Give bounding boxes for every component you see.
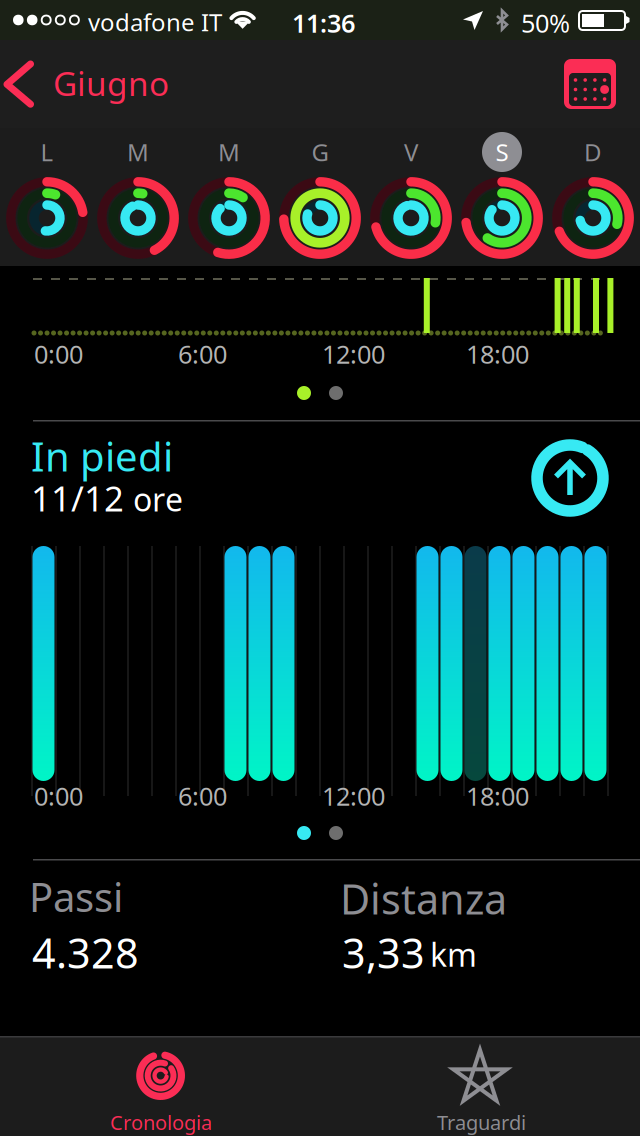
staticText: M — [127, 136, 149, 168]
staticText: 3,33 — [342, 925, 425, 980]
staticText: 11/12 — [31, 475, 124, 521]
staticText: Cronologia — [110, 1109, 212, 1136]
staticText: 11:36 — [292, 6, 355, 40]
button[interactable]: Giugno — [0, 40, 215, 128]
button[interactable]: V — [365, 128, 456, 176]
staticText: 18:00 — [466, 779, 529, 813]
button[interactable]: D — [547, 128, 638, 176]
staticText: 4.328 — [32, 925, 139, 980]
staticText: ore — [133, 478, 183, 520]
staticText: 50% — [521, 6, 570, 40]
button[interactable]: Cronologia — [0, 1036, 320, 1136]
staticText: 0:00 — [34, 779, 83, 813]
button[interactable]: L — [1, 128, 92, 176]
button[interactable]: M — [183, 128, 274, 176]
staticText: Traguardi — [437, 1109, 526, 1136]
staticText: 12:00 — [322, 337, 385, 371]
staticText: 18:00 — [466, 337, 529, 371]
button[interactable]: M — [92, 128, 183, 176]
staticText: vodafone IT — [88, 6, 222, 38]
button[interactable]: G — [274, 128, 365, 176]
staticText: 6:00 — [178, 779, 227, 813]
staticText: D — [584, 136, 602, 168]
staticText: Distanza — [340, 871, 507, 926]
button[interactable]: Traguardi — [0, 1036, 320, 1136]
staticText: L — [40, 136, 53, 168]
staticText: Passi — [29, 870, 123, 923]
button[interactable]: Calendar — [0, 40, 640, 128]
staticText: 0:00 — [34, 337, 83, 371]
staticText: G — [311, 136, 328, 168]
staticText: In piedi — [31, 429, 173, 483]
button[interactable]: Stand goal — [0, 420, 640, 530]
staticText: M — [218, 136, 240, 168]
staticText: S — [495, 136, 508, 168]
staticText: 12:00 — [322, 779, 385, 813]
button[interactable]: S — [456, 128, 547, 176]
staticText: Giugno — [53, 61, 169, 105]
staticText: km — [430, 933, 477, 975]
staticText: 6:00 — [178, 337, 227, 371]
staticText: V — [404, 136, 418, 168]
